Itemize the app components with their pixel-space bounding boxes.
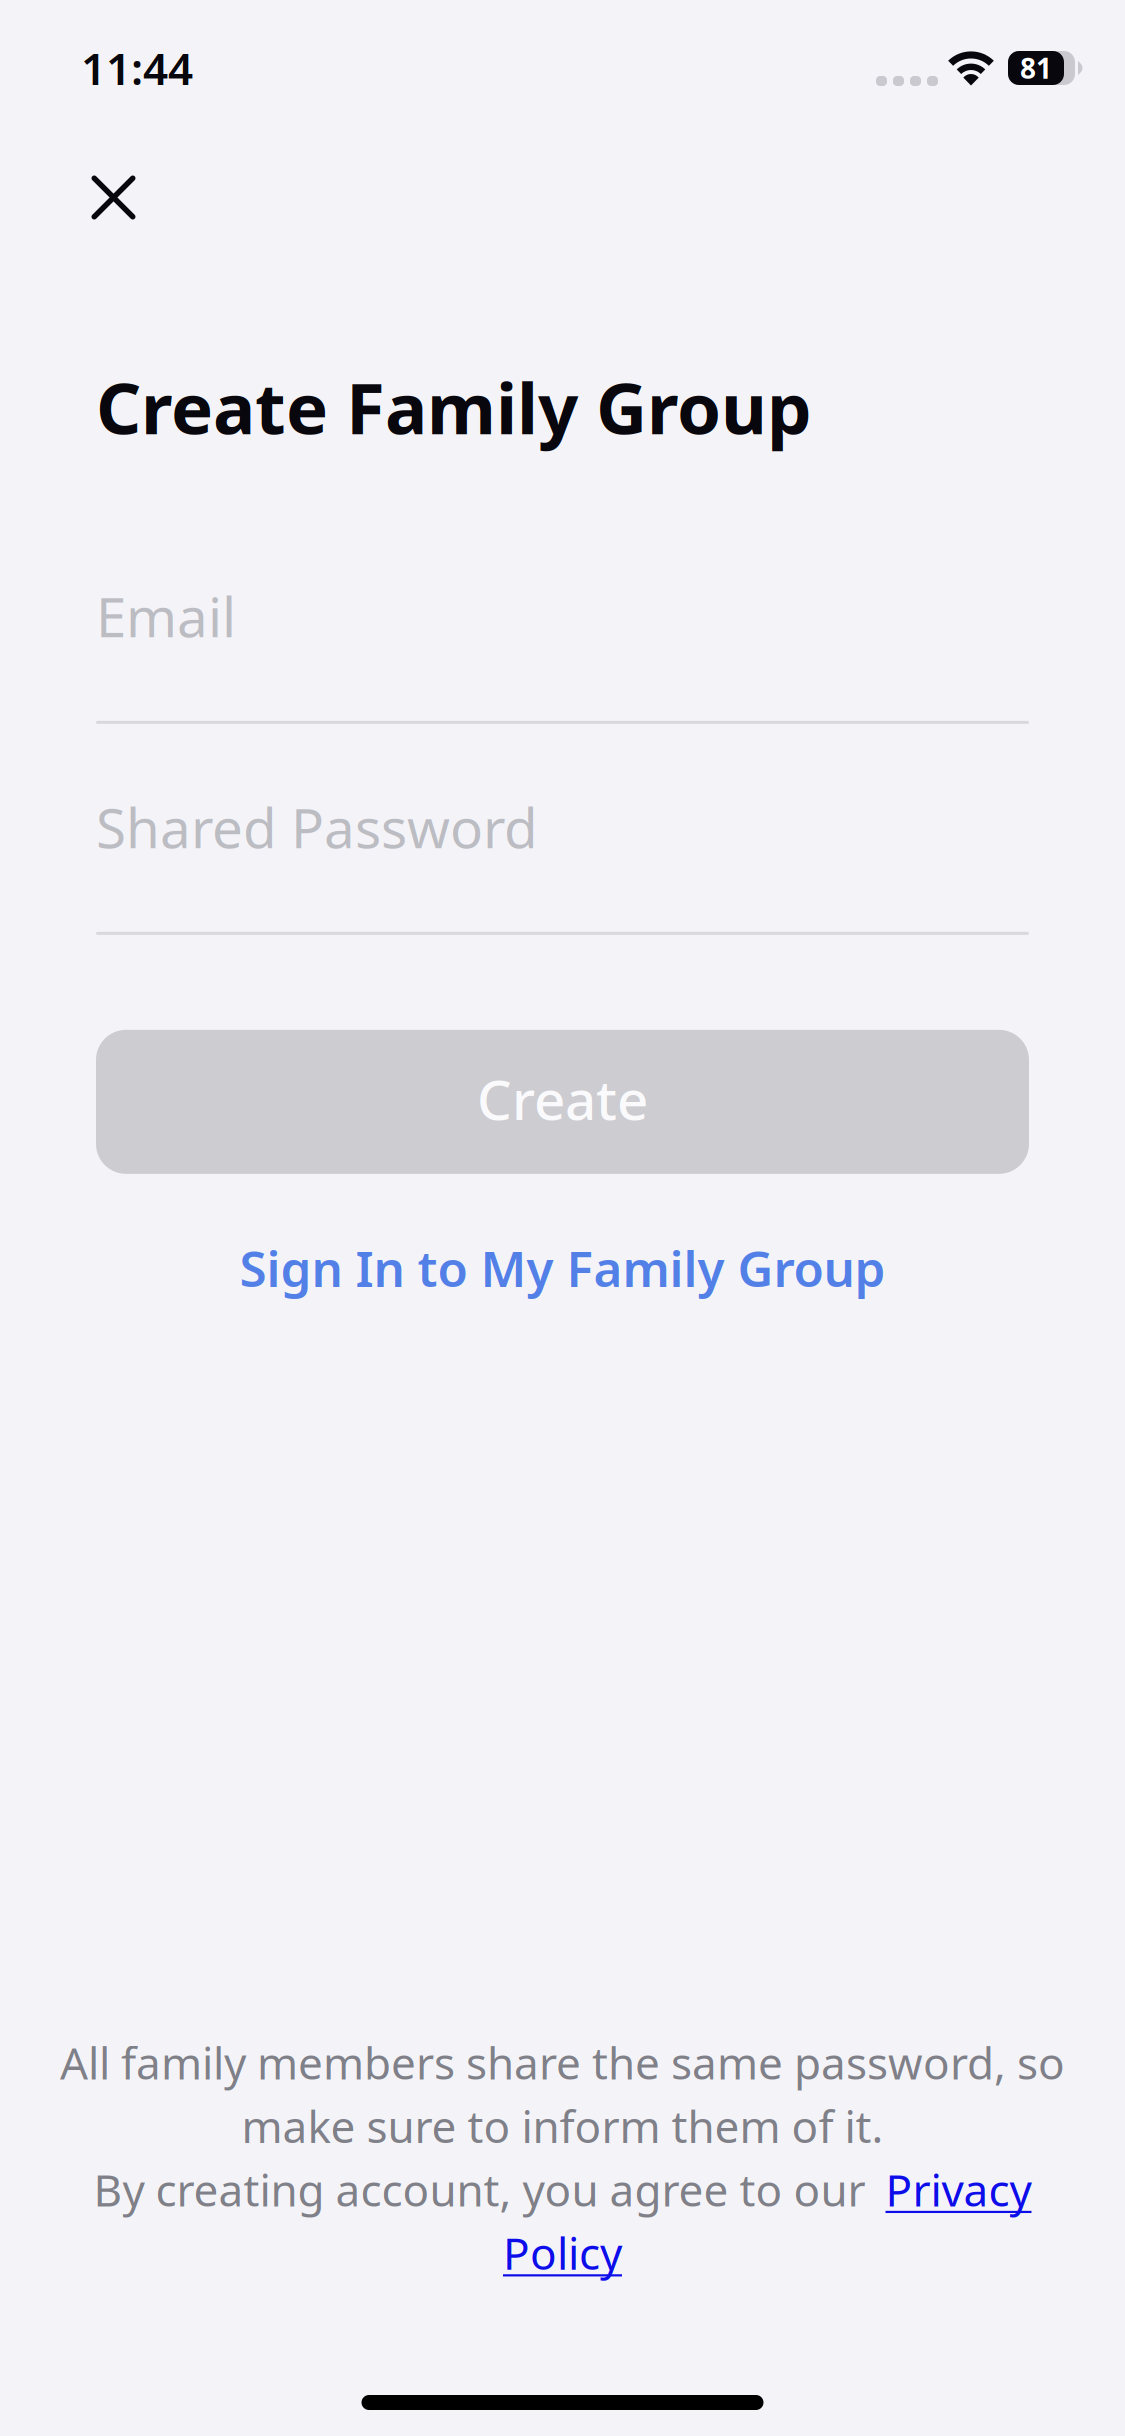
staticText: Shared Password	[96, 791, 538, 863]
staticText: Sign In to My Family Group	[239, 1235, 885, 1301]
button[interactable]: Sign In to My Family Group	[56, 1219, 1069, 1317]
button[interactable]: Email	[96, 580, 1029, 724]
staticText: Create Family Group	[96, 360, 812, 454]
button[interactable]: Create	[96, 1030, 1029, 1174]
staticText: By creating account, you agree to our	[93, 2160, 865, 2218]
button[interactable]: Privacy Policy	[503, 2224, 622, 2282]
staticText: 81	[1020, 49, 1052, 87]
staticText: Privacy	[885, 2160, 1031, 2218]
staticText: 11:44	[81, 39, 193, 97]
staticText: make sure to inform them of it.	[241, 2097, 883, 2155]
button[interactable]: Privacy Policy	[885, 2160, 1031, 2218]
staticText: Policy	[503, 2224, 622, 2282]
button[interactable]: Close	[65, 149, 162, 246]
staticText: All family members share the same passwo…	[60, 2033, 1065, 2092]
staticText: Create	[477, 1062, 648, 1135]
staticText: Email	[96, 580, 236, 652]
button[interactable]: Shared Password	[96, 791, 1029, 935]
